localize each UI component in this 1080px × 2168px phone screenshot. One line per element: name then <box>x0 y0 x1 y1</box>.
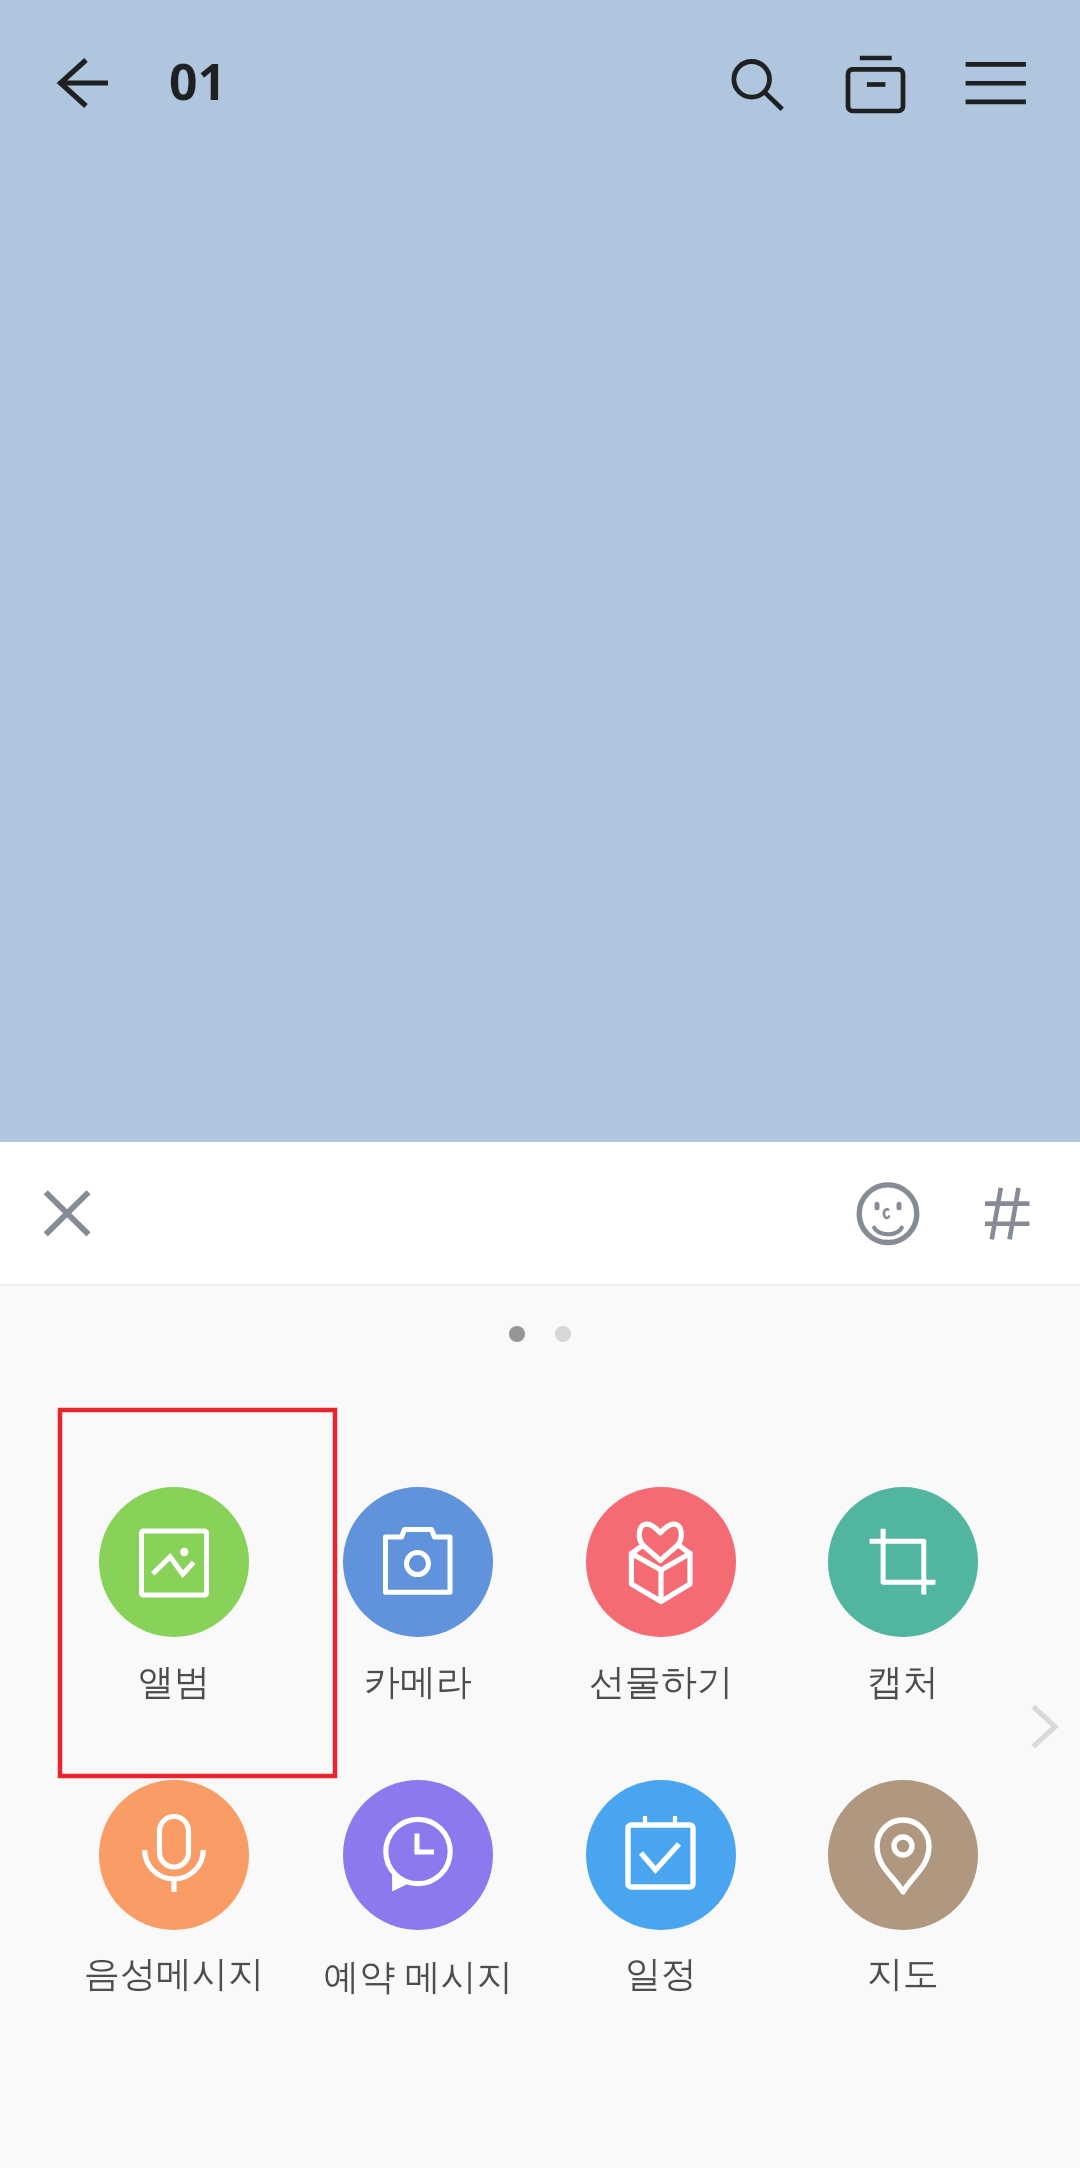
button[interactable]: 캡처 <box>781 1437 1025 1717</box>
button[interactable]: 지도 <box>781 1730 1025 2010</box>
staticText: 지도 <box>781 1951 1025 1996</box>
staticText: 음성메시지 <box>52 1951 296 1996</box>
button[interactable]: Close <box>25 1170 111 1256</box>
button[interactable]: Menu <box>946 34 1042 130</box>
button[interactable]: 카메라 <box>296 1437 540 1717</box>
staticText: 카메라 <box>296 1659 540 1704</box>
button[interactable]: Search <box>706 34 802 130</box>
button[interactable]: 일정 <box>539 1730 783 2010</box>
staticText: 일정 <box>539 1951 783 1996</box>
button[interactable]: 앨범 <box>52 1437 296 1717</box>
button[interactable]: 음성메시지 <box>52 1730 296 2010</box>
button[interactable]: 선물하기 <box>539 1437 783 1717</box>
button[interactable]: Emoticon <box>838 1164 938 1264</box>
staticText: 앨범 <box>52 1659 296 1704</box>
staticText: 01 <box>169 47 227 115</box>
button[interactable]: Next page <box>1026 1700 1080 1754</box>
button[interactable]: Archive <box>828 34 924 130</box>
button[interactable]: 예약 메시지 <box>296 1730 540 2010</box>
staticText: 캡처 <box>781 1659 1025 1704</box>
staticText: 선물하기 <box>539 1659 783 1704</box>
staticText: 예약 메시지 <box>296 1951 540 2000</box>
button[interactable]: Back <box>22 30 130 138</box>
button[interactable]: Hashtag <box>965 1166 1059 1260</box>
